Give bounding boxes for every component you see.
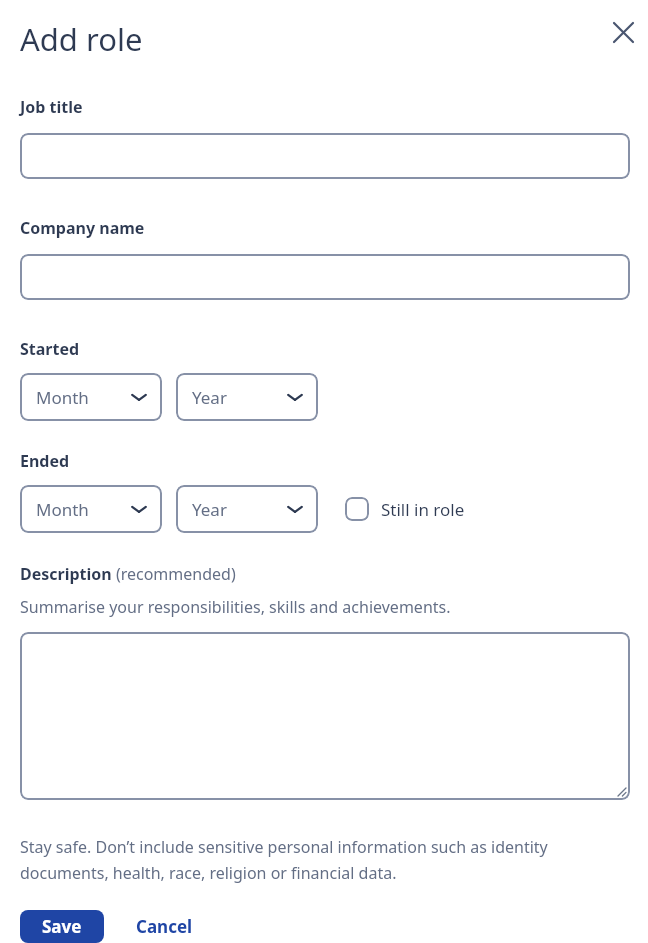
button[interactable] <box>20 133 630 179</box>
staticText: Job title <box>20 96 83 118</box>
staticText: Started <box>20 338 80 360</box>
staticText: Summarise your responsibilities, skills … <box>20 596 451 618</box>
staticText: Year <box>192 498 227 521</box>
staticText: Month <box>36 498 89 521</box>
staticText: Save <box>42 915 82 938</box>
button[interactable]: Cancel <box>132 910 197 943</box>
staticText: Month <box>36 386 89 409</box>
button[interactable]: Save <box>20 910 104 943</box>
button[interactable] <box>20 254 630 300</box>
staticText: Description (recommended) <box>20 563 236 585</box>
button[interactable]: Year <box>176 373 318 421</box>
staticText: Cancel <box>136 915 193 938</box>
staticText: Add role <box>20 18 143 60</box>
button[interactable]: Close <box>603 12 643 52</box>
staticText: Ended <box>20 450 70 472</box>
staticText: Year <box>192 386 227 409</box>
button[interactable]: Year <box>176 485 318 533</box>
staticText: Stay safe. Don’t include sensitive perso… <box>20 836 608 884</box>
button[interactable] <box>20 632 630 800</box>
button[interactable]: Still in role <box>343 491 467 527</box>
staticText: Still in role <box>381 498 465 521</box>
button[interactable]: Month <box>20 485 162 533</box>
staticText: Company name <box>20 217 145 239</box>
button[interactable]: Month <box>20 373 162 421</box>
